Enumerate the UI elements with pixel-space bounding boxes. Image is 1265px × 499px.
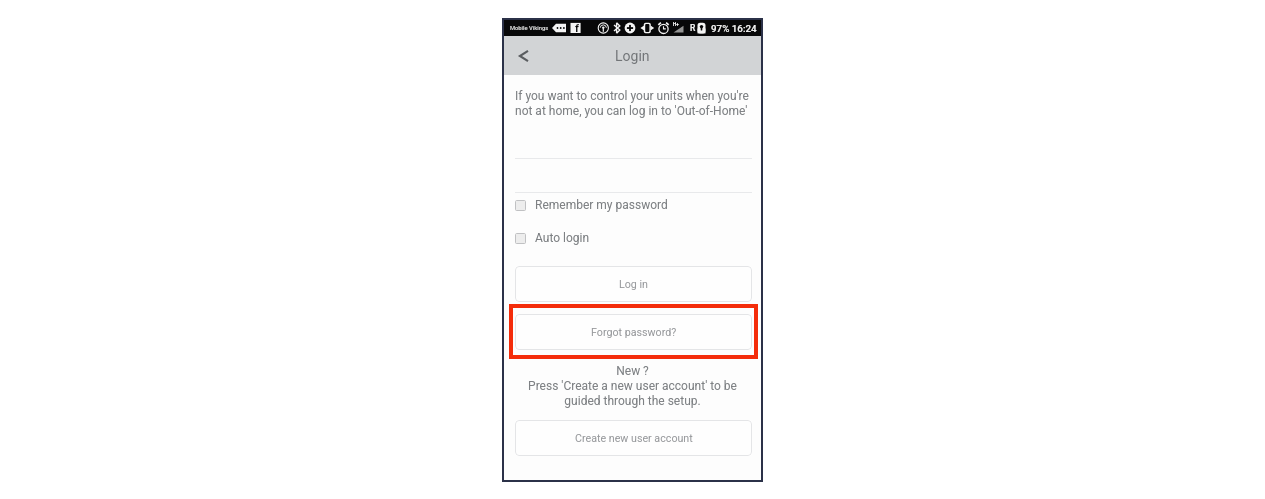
staticText: Create new user account bbox=[575, 432, 693, 445]
staticText: f bbox=[575, 22, 579, 35]
staticText: 97% 16:24 bbox=[711, 23, 757, 34]
button[interactable]: Create new user account bbox=[515, 420, 752, 456]
button[interactable]: Forgot password? bbox=[515, 314, 752, 350]
staticText: Forgot password? bbox=[591, 326, 677, 339]
staticText: R bbox=[690, 23, 696, 33]
staticText: Login bbox=[615, 48, 650, 64]
button[interactable]: Auto login bbox=[515, 228, 752, 248]
button[interactable]: Remember my password bbox=[515, 195, 752, 215]
button[interactable]: Back bbox=[510, 43, 536, 69]
staticText: Mobile Vikings bbox=[510, 25, 549, 32]
staticText: Auto login bbox=[535, 231, 590, 245]
staticText: Remember my password bbox=[535, 198, 668, 212]
staticText: Log in bbox=[619, 278, 649, 291]
staticText: New ? Press 'Create a new user account' … bbox=[504, 364, 761, 408]
staticText: H+ bbox=[673, 22, 679, 27]
staticText: If you want to control your units when y… bbox=[515, 89, 749, 118]
button[interactable]: Log in bbox=[515, 266, 752, 302]
